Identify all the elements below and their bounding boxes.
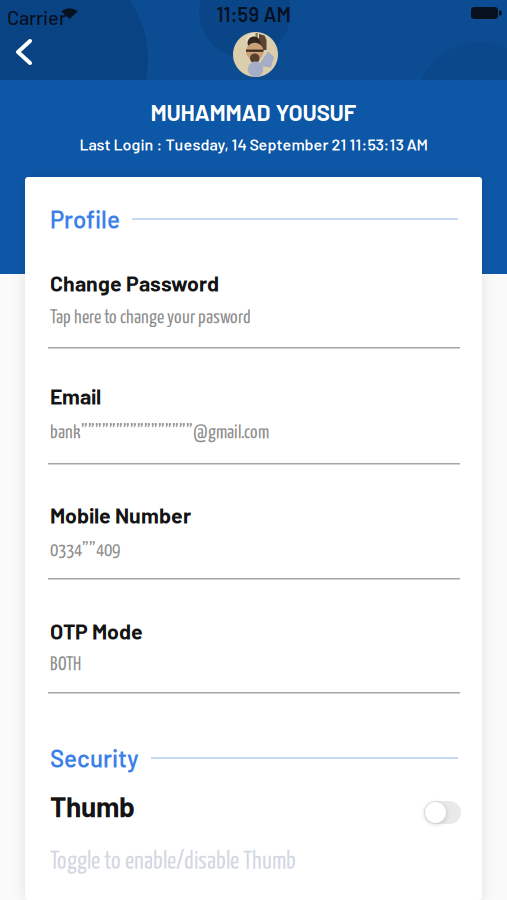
staticText: Security [50, 744, 139, 772]
button[interactable]: Back [14, 38, 36, 66]
staticText: Last Login : Tuesday, 14 September 21 11… [79, 134, 427, 154]
staticText: Mobile Number [50, 502, 191, 528]
button[interactable]: Thumb [424, 801, 461, 824]
staticText: Profile [50, 205, 120, 233]
staticText: bank””””””””””””””””@gmail.com [50, 424, 269, 442]
staticText: Carrier [7, 5, 66, 29]
button[interactable]: OTP Mode [50, 619, 460, 691]
staticText: MUHAMMAD YOUSUF [150, 98, 356, 126]
button[interactable]: Email [50, 384, 460, 462]
staticText: 11:59 AM [216, 2, 290, 26]
staticText: Email [50, 383, 101, 409]
staticText: Tap here to change your pasword [50, 309, 251, 327]
button[interactable]: Mobile Number [50, 503, 460, 577]
staticText: 0334””409 [50, 542, 120, 560]
staticText: OTP Mode [50, 618, 143, 644]
button[interactable]: Change Password [50, 271, 460, 346]
staticText: Thumb [50, 789, 135, 823]
staticText: Change Password [50, 270, 219, 296]
staticText: Toggle to enable/disable Thumb [50, 850, 296, 874]
staticText: BOTH [50, 656, 81, 674]
button[interactable]: Profile photo [233, 32, 278, 77]
